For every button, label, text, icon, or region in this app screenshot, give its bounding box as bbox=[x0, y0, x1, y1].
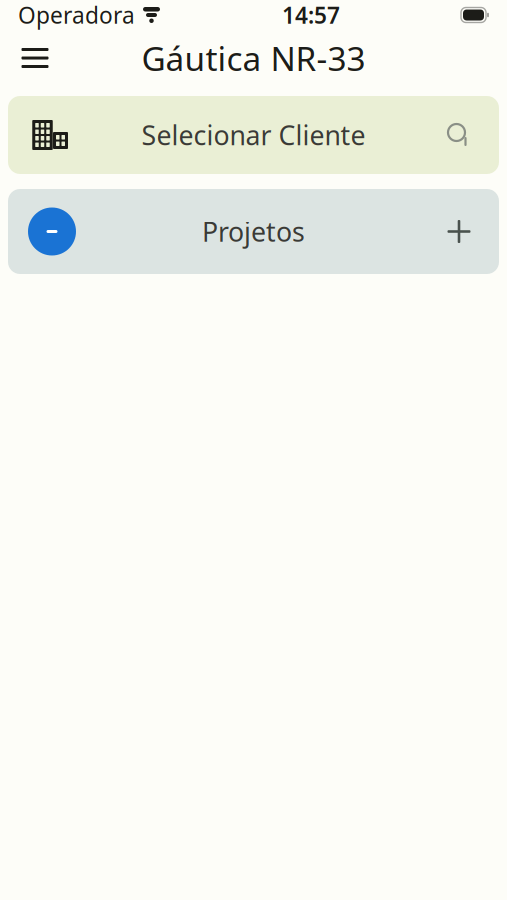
button[interactable]: Menu bbox=[13, 36, 57, 80]
button[interactable]: Adicionar projeto bbox=[437, 209, 481, 253]
button[interactable]: Selecionar Cliente bbox=[8, 96, 499, 174]
button[interactable]: Recolher projetos bbox=[26, 205, 78, 257]
staticText: Projetos bbox=[202, 214, 305, 249]
staticText: 14:57 bbox=[282, 0, 340, 30]
staticText: Gáutica NR-33 bbox=[141, 36, 365, 80]
staticText: Selecionar Cliente bbox=[141, 117, 365, 153]
staticText: Operadora bbox=[18, 0, 135, 30]
